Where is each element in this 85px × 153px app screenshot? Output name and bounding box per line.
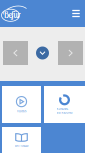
button[interactable]: Menu xyxy=(70,7,82,19)
staticText: VIDEOS xyxy=(17,109,26,113)
button[interactable]: KUNDEN- BETREUUNG xyxy=(44,86,85,123)
button[interactable]: Scroll to content xyxy=(35,46,49,60)
button[interactable]: Previous xyxy=(3,41,28,65)
button[interactable]: Next xyxy=(58,41,83,65)
staticText: Befür xyxy=(2,9,20,20)
button[interactable]: VIDEOS xyxy=(2,86,41,123)
staticText: KUNDEN- BETREUUNG xyxy=(56,107,72,114)
button[interactable]: AKTUELLES xyxy=(2,127,41,153)
button[interactable]: Befür home xyxy=(0,4,28,22)
staticText: AKTUELLES xyxy=(15,144,28,147)
